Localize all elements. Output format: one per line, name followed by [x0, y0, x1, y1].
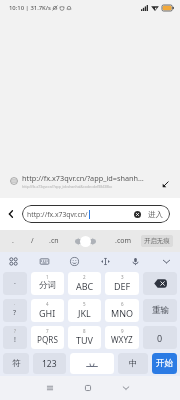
staticText: ?	[13, 308, 17, 318]
staticText: 3	[121, 274, 124, 280]
button[interactable]: Move cursor	[75, 236, 96, 247]
button[interactable]	[143, 272, 177, 295]
staticText: /	[31, 236, 34, 246]
staticText: 5	[83, 301, 86, 307]
staticText: PQRS	[37, 334, 58, 345]
staticText: 符	[12, 358, 21, 369]
button[interactable]: Home	[78, 378, 98, 398]
button[interactable]: Text selection	[97, 253, 114, 270]
staticText: http://fx.x73qvr.cn/	[27, 210, 88, 219]
staticText: 4	[46, 301, 49, 307]
button[interactable]: 1	[31, 272, 64, 295]
button[interactable]: .	[10, 234, 16, 248]
staticText: 1	[46, 274, 49, 280]
button[interactable]: Clear	[133, 210, 142, 219]
staticText: .	[12, 236, 14, 246]
staticText: 分词	[39, 280, 56, 291]
staticText: http://fx.x73qvr.cn/?app_id=shanhai&code…	[22, 184, 113, 189]
staticText: DEF	[114, 280, 131, 292]
button[interactable]: .cn	[47, 234, 61, 248]
button[interactable]: ?	[3, 326, 27, 349]
button[interactable]: /	[29, 234, 36, 248]
staticText: http://fx.x73qvr.cn/?app_id=shanh…	[22, 173, 144, 183]
button[interactable]: 7	[31, 326, 64, 349]
staticText: 2	[83, 274, 86, 280]
staticText: WXYZ	[111, 334, 133, 345]
button[interactable]: 符	[3, 353, 29, 374]
staticText: 6	[121, 301, 124, 307]
staticText: ABC	[76, 280, 94, 292]
button[interactable]: 开启无痕	[141, 235, 173, 247]
button[interactable]: 0	[143, 326, 177, 349]
button[interactable]: Insert URL	[159, 178, 171, 190]
staticText: 8	[83, 328, 86, 334]
staticText: TUV	[76, 334, 93, 346]
button[interactable]: 9	[105, 326, 139, 349]
staticText: MNO	[111, 307, 134, 319]
button[interactable]: ·	[3, 299, 27, 322]
staticText: 进入	[148, 210, 163, 219]
button[interactable]: Hide keyboard	[158, 253, 175, 270]
staticText: !	[14, 335, 16, 345]
staticText: 重输	[152, 305, 169, 316]
staticText: .com	[115, 236, 132, 246]
staticText: ·	[14, 279, 16, 289]
button[interactable]: Back	[0, 198, 22, 230]
button[interactable]: Emoji	[66, 253, 83, 270]
staticText: ·	[14, 301, 16, 307]
button[interactable]: 8	[68, 326, 101, 349]
button[interactable]: 4	[31, 299, 64, 322]
button[interactable]: Apps	[5, 253, 22, 270]
button[interactable]: 中	[118, 353, 148, 374]
button[interactable]: Keyboard layout	[36, 253, 53, 270]
button[interactable]: Recent apps	[40, 378, 60, 398]
button[interactable]: .com	[113, 234, 134, 248]
button[interactable]: 123	[33, 353, 66, 374]
button[interactable]: Voice input	[127, 253, 144, 270]
button[interactable]: http://fx.x73qvr.cn/	[22, 205, 170, 223]
button[interactable]: 6	[105, 299, 139, 322]
staticText: GHI	[39, 307, 56, 319]
button[interactable]: 开始	[152, 353, 177, 374]
staticText: 10:10 | 31.7K/s	[9, 4, 51, 12]
staticText: 7	[46, 328, 49, 334]
staticText: .cn	[49, 236, 59, 246]
button[interactable]: 5	[68, 299, 101, 322]
staticText: JKL	[78, 307, 91, 319]
staticText: 中	[129, 358, 138, 369]
staticText: ?	[14, 328, 16, 334]
staticText: 开始	[156, 358, 173, 369]
staticText: 123	[42, 358, 57, 370]
staticText: 9	[121, 328, 124, 334]
staticText: 开启无痕	[144, 237, 170, 245]
button[interactable]: ·	[3, 272, 27, 295]
staticText: 0	[157, 332, 163, 344]
button[interactable]: 重输	[143, 299, 177, 322]
button[interactable]: Back	[116, 378, 136, 398]
button[interactable]	[70, 353, 114, 374]
button[interactable]: 2	[68, 272, 101, 295]
button[interactable]: 3	[105, 272, 139, 295]
